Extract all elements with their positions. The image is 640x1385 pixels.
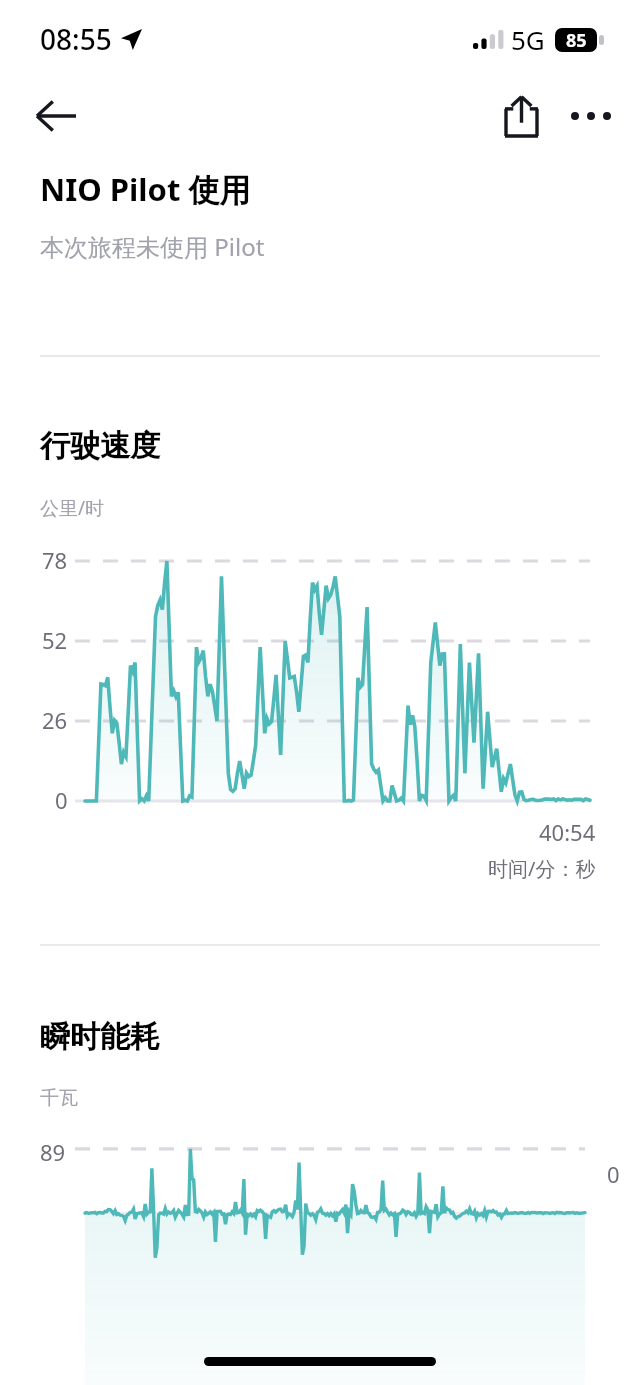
staticText: 千瓦	[40, 1086, 78, 1110]
staticText: 85	[566, 28, 587, 52]
staticText: 89	[40, 1137, 66, 1167]
staticText: 公里/时	[40, 495, 105, 521]
button[interactable]: More options	[556, 81, 626, 151]
staticText: 0	[607, 1159, 620, 1189]
staticText: 时间/分：秒	[488, 855, 596, 882]
staticText: 08:55	[40, 20, 112, 58]
staticText: 40:54	[539, 817, 596, 847]
staticText: 0	[55, 785, 68, 815]
button[interactable]: Back	[20, 80, 92, 152]
staticText: NIO Pilot 使用	[40, 168, 251, 210]
staticText: 本次旅程未使用 Pilot	[40, 230, 265, 263]
staticText: 5G	[511, 22, 545, 57]
staticText: 26	[42, 705, 68, 735]
staticText: 行驶速度	[40, 427, 160, 465]
staticText: 78	[42, 545, 68, 575]
staticText: 瞬时能耗	[40, 1018, 160, 1056]
staticText: 52	[42, 625, 68, 655]
button[interactable]: Share	[486, 81, 556, 151]
